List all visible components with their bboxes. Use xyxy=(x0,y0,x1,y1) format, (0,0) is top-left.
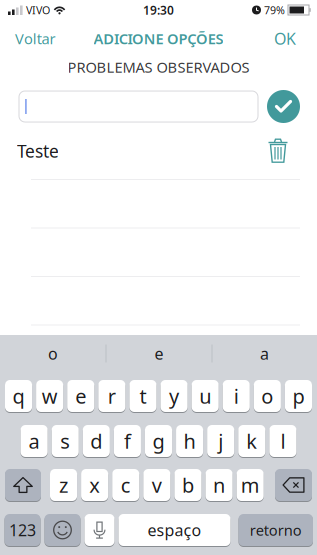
staticText: 19:30 xyxy=(143,2,174,18)
button[interactable]: b xyxy=(174,469,201,501)
button[interactable]: e xyxy=(67,380,94,412)
button[interactable]: Excluir xyxy=(268,138,288,164)
staticText: t xyxy=(139,383,146,409)
button[interactable]: v xyxy=(143,469,170,501)
staticText: x xyxy=(89,472,100,498)
button[interactable]: m xyxy=(237,469,264,501)
staticText: OK xyxy=(274,28,296,49)
button[interactable]: k xyxy=(238,425,265,457)
staticText: 123 xyxy=(9,519,36,541)
button[interactable]: a xyxy=(212,335,316,372)
staticText: e xyxy=(154,343,163,364)
button[interactable]: n xyxy=(205,469,233,501)
staticText: r xyxy=(108,383,116,409)
staticText: o xyxy=(48,343,58,364)
button[interactable]: z xyxy=(50,469,77,501)
button[interactable]: q xyxy=(5,380,32,412)
staticText: w xyxy=(42,383,58,409)
staticText: q xyxy=(13,383,25,409)
button[interactable]: g xyxy=(145,425,172,457)
staticText: g xyxy=(152,428,164,454)
button[interactable]: y xyxy=(160,380,188,412)
button[interactable]: Apagar xyxy=(275,469,312,501)
staticText: k xyxy=(246,428,257,454)
staticText: z xyxy=(59,472,68,498)
button[interactable]: x xyxy=(81,469,108,501)
button[interactable]: e xyxy=(106,335,211,372)
button[interactable]: Emoji xyxy=(44,514,80,546)
button[interactable]: Shift xyxy=(5,469,41,501)
staticText: m xyxy=(241,472,260,498)
button[interactable]: c xyxy=(112,469,139,501)
button[interactable]: w xyxy=(36,380,63,412)
button[interactable]: espaço xyxy=(118,514,230,546)
staticText: c xyxy=(121,472,131,498)
staticText: p xyxy=(292,383,304,409)
button[interactable]: o xyxy=(254,380,281,412)
staticText: i xyxy=(234,383,239,409)
button[interactable]: a xyxy=(21,425,48,457)
button[interactable]: Confirmar xyxy=(267,90,300,123)
staticText: Teste xyxy=(17,139,59,162)
staticText: a xyxy=(260,343,269,364)
button[interactable]: OK xyxy=(274,28,296,49)
button[interactable]: retorno xyxy=(238,514,313,546)
staticText: v xyxy=(152,472,162,498)
staticText: retorno xyxy=(250,520,302,540)
button[interactable]: s xyxy=(52,425,79,457)
staticText: a xyxy=(29,428,40,454)
button[interactable]: f xyxy=(114,425,141,457)
button[interactable]: i xyxy=(223,380,250,412)
staticText: e xyxy=(75,383,86,409)
staticText: l xyxy=(280,428,285,454)
staticText: h xyxy=(184,428,196,454)
button[interactable]: Campo de texto xyxy=(19,91,258,122)
staticText: o xyxy=(261,383,273,409)
staticText: espaço xyxy=(147,519,201,541)
button[interactable]: o xyxy=(0,335,105,372)
button[interactable]: t xyxy=(129,380,156,412)
staticText: y xyxy=(169,383,179,409)
button[interactable]: Voltar xyxy=(15,29,55,48)
button[interactable]: Ditado xyxy=(84,514,114,546)
staticText: s xyxy=(60,428,70,454)
button[interactable]: u xyxy=(192,380,219,412)
staticText: Voltar xyxy=(15,29,55,48)
button[interactable]: 123 xyxy=(4,514,40,546)
staticText: j xyxy=(218,428,223,454)
staticText: u xyxy=(199,383,211,409)
button[interactable]: d xyxy=(83,425,110,457)
staticText: PROBLEMAS OBSERVADOS xyxy=(67,57,249,77)
staticText: VIVO xyxy=(26,3,50,17)
staticText: ADICIONE OPÇÕES xyxy=(94,29,223,48)
staticText: 79% xyxy=(264,3,285,17)
staticText: d xyxy=(90,428,102,454)
staticText: b xyxy=(182,472,194,498)
button[interactable]: r xyxy=(98,380,125,412)
staticText: n xyxy=(213,472,225,498)
button[interactable]: j xyxy=(207,425,234,457)
staticText: f xyxy=(124,428,131,454)
button[interactable]: l xyxy=(269,425,296,457)
button[interactable]: h xyxy=(176,425,203,457)
button[interactable]: p xyxy=(285,380,312,412)
